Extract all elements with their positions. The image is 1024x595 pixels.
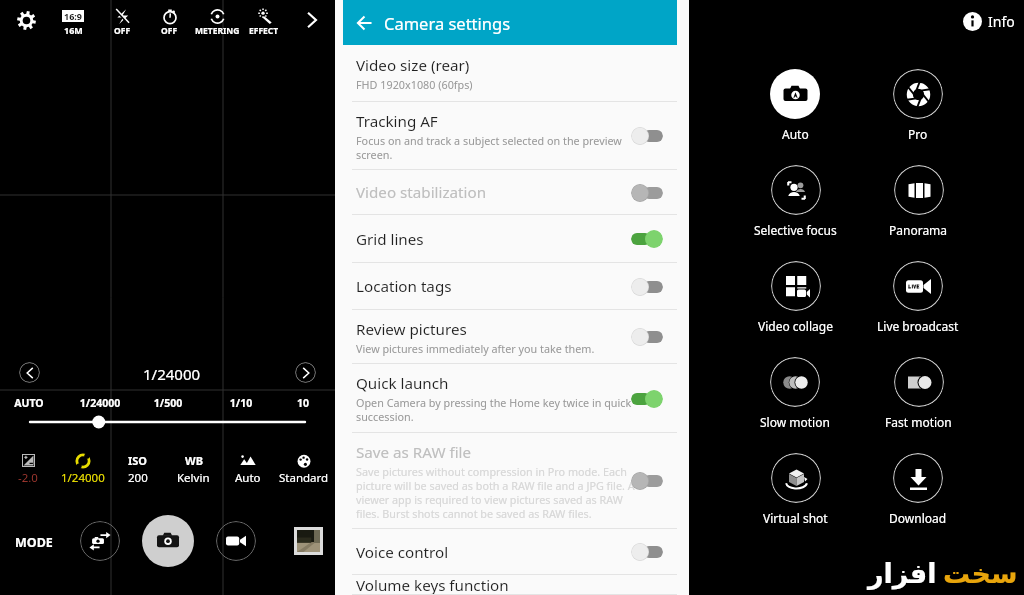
button[interactable]: OFF <box>143 9 195 37</box>
button[interactable]: Voice control <box>335 529 689 575</box>
button[interactable]: Quick launch <box>335 364 689 433</box>
staticText: Info <box>988 12 1015 31</box>
button[interactable]: Auto <box>218 453 278 486</box>
button[interactable]: Switch camera <box>80 521 120 561</box>
button[interactable]: Turn on <box>631 471 663 491</box>
button[interactable]: Record video <box>216 521 256 561</box>
button[interactable]: Turn on <box>631 277 663 297</box>
staticText: Quick launch <box>356 373 449 394</box>
button[interactable]: Gallery <box>297 530 320 552</box>
staticText: Volume keys function <box>356 575 509 595</box>
button[interactable]: Video stabilization <box>335 170 689 215</box>
button[interactable]: Review pictures <box>335 310 689 364</box>
staticText: 1/24000 <box>143 364 201 384</box>
staticText: Open Camera by pressing the Home key twi… <box>356 395 636 424</box>
staticText: افزار <box>868 558 937 589</box>
staticText: Video collage <box>758 318 833 334</box>
staticText: Voice control <box>356 542 449 563</box>
button[interactable]: Standard <box>274 453 334 486</box>
button[interactable]: MODE <box>11 532 57 553</box>
staticText: MODE <box>15 534 53 551</box>
staticText: Download <box>889 510 947 526</box>
button[interactable]: Turn off <box>631 389 663 409</box>
staticText: Tracking AF <box>356 111 438 132</box>
staticText: 1/24000 <box>61 470 105 486</box>
staticText: FHD 1920x1080 (60fps) <box>356 77 473 92</box>
button[interactable]: Slow motion <box>740 357 850 430</box>
button[interactable]: Video collage <box>740 261 850 334</box>
button[interactable]: Grid lines <box>335 215 689 263</box>
button[interactable]: -2.0 <box>0 453 58 486</box>
staticText: Video size (rear) <box>356 55 470 76</box>
button[interactable]: Save as RAW file <box>335 433 689 529</box>
staticText: ISO <box>128 453 148 468</box>
staticText: Save pictures without compression in Pro… <box>356 464 636 521</box>
button[interactable]: Virtual shot <box>740 453 850 526</box>
button[interactable]: Live broadcast <box>863 261 973 334</box>
button[interactable]: OFF <box>96 9 148 37</box>
staticText: View pictures immediately after you take… <box>356 341 595 356</box>
button[interactable]: 16:9 <box>49 10 97 36</box>
staticText: 10 <box>273 396 333 410</box>
button[interactable]: Selective focus <box>740 165 850 238</box>
staticText: 16:9 <box>64 10 82 22</box>
button[interactable]: METERING <box>191 9 243 37</box>
button[interactable]: Pro <box>863 69 973 142</box>
button[interactable]: Take photo <box>142 515 194 567</box>
button[interactable]: Auto <box>740 69 850 142</box>
staticText: 1/10 <box>211 396 271 410</box>
staticText: Grid lines <box>356 229 424 250</box>
staticText: Focus on and track a subject selected on… <box>356 133 636 162</box>
staticText: Camera settings <box>384 12 511 34</box>
button[interactable]: Volume keys function <box>335 575 689 595</box>
button[interactable]: Info <box>963 12 1015 31</box>
staticText: METERING <box>195 25 240 37</box>
button[interactable]: Tracking AF <box>335 102 689 170</box>
staticText: Review pictures <box>356 319 467 340</box>
staticText: OFF <box>114 25 131 37</box>
staticText: 1/24000 <box>70 396 130 410</box>
staticText: Standard <box>279 470 329 486</box>
staticText: Auto <box>782 126 809 142</box>
staticText: 200 <box>128 470 148 486</box>
staticText: 16M <box>64 24 83 36</box>
staticText: Location tags <box>356 276 452 297</box>
staticText: WB <box>185 453 203 468</box>
button[interactable]: Back <box>352 11 376 35</box>
staticText: Pro <box>908 126 928 142</box>
staticText: AUTO <box>0 396 59 410</box>
button[interactable]: Fast motion <box>863 357 973 430</box>
staticText: Virtual shot <box>763 510 828 526</box>
button[interactable]: Turn on <box>631 542 663 562</box>
button[interactable]: More options <box>299 7 325 33</box>
staticText: Kelvin <box>177 470 210 486</box>
staticText: Selective focus <box>754 222 837 238</box>
button[interactable]: Panorama <box>863 165 973 238</box>
staticText: -2.0 <box>18 470 38 486</box>
button[interactable]: ISO <box>108 453 168 486</box>
button[interactable]: Back <box>343 0 677 45</box>
button[interactable]: Video size (rear) <box>335 45 689 102</box>
button[interactable]: Settings <box>13 7 39 33</box>
button[interactable]: Turn on <box>631 327 663 347</box>
staticText: Video stabilization <box>356 182 487 203</box>
button[interactable]: Turn off <box>631 229 663 249</box>
staticText: Live broadcast <box>877 318 959 334</box>
button[interactable]: Previous value <box>19 362 40 383</box>
staticText: Save as RAW file <box>356 442 472 463</box>
button[interactable]: Turn on <box>631 183 663 203</box>
staticText: Fast motion <box>885 414 952 430</box>
button[interactable]: Location tags <box>335 263 689 310</box>
button[interactable]: Turn on <box>631 126 663 146</box>
button[interactable]: EFFECT <box>238 9 290 37</box>
staticText: OFF <box>161 25 178 37</box>
button[interactable]: WB <box>163 453 223 486</box>
staticText: Panorama <box>889 222 948 238</box>
staticText: 1/500 <box>138 396 198 410</box>
button[interactable]: Download <box>863 453 973 526</box>
button[interactable]: Next value <box>295 362 316 383</box>
staticText: Auto <box>235 470 261 486</box>
staticText: Slow motion <box>760 414 830 430</box>
staticText: EFFECT <box>249 25 279 37</box>
button[interactable]: 1/24000 <box>53 453 113 486</box>
